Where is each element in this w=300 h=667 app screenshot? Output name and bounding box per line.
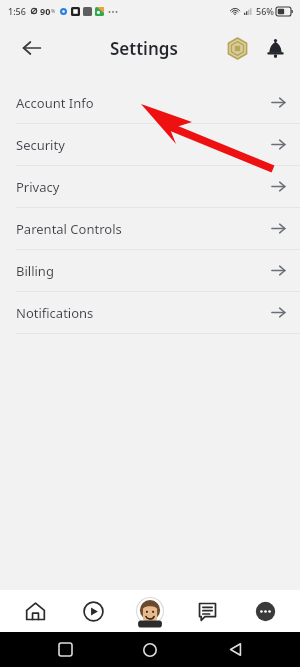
button[interactable]: Avatar [124,590,176,632]
button[interactable]: Notifications [258,31,292,65]
button[interactable]: Account Info [0,82,300,123]
button[interactable]: Parental Controls [0,208,300,249]
staticText: 56% [256,5,274,17]
staticText: % [51,8,56,15]
staticText: Billing [16,262,54,280]
button[interactable]: Play [67,590,119,632]
button[interactable]: Recents [45,632,85,667]
button[interactable]: More [239,590,291,632]
staticText: Parental Controls [16,220,122,238]
button[interactable]: Privacy [0,166,300,207]
button[interactable]: Home [9,590,61,632]
staticText: Privacy [16,178,60,196]
button[interactable]: Chat [181,590,233,632]
staticText: Security [16,136,65,154]
staticText: Account Info [16,94,94,112]
button[interactable]: Security [0,124,300,165]
button[interactable]: Back [215,632,255,667]
button[interactable]: Robux [220,31,254,65]
staticText: Notifications [16,304,94,322]
button[interactable]: Billing [0,250,300,291]
staticText: 1:56 [8,5,26,17]
button[interactable]: Notifications [0,292,300,333]
button[interactable]: Home [130,632,170,667]
staticText: 90 [40,5,51,17]
staticText: Settings [110,37,178,60]
button[interactable]: Back [12,28,52,68]
